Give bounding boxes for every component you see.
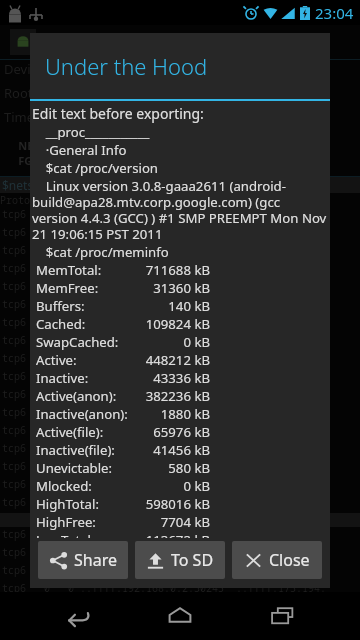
- staticText: 31360 kB: [128, 279, 210, 297]
- staticText: tcp6 0 0 ::ffff:192.168.0.2:30245 ::ffff…: [2, 527, 326, 541]
- staticText: Cached:: [36, 315, 128, 333]
- button[interactable]: Back: [51, 592, 103, 640]
- staticText: MemTotal:: [36, 261, 128, 279]
- staticText: MemFree:: [36, 279, 128, 297]
- button[interactable]: Share: [38, 541, 128, 579]
- staticText: Inactive(anon):: [36, 405, 128, 423]
- staticText: Buffers:: [36, 297, 128, 315]
- staticText: tcp6 0 0 ::ffff:192.168.0.2:30245 ::ffff…: [2, 315, 326, 329]
- staticText: 113672 kB: [128, 531, 210, 538]
- staticText: Share: [74, 549, 117, 571]
- staticText: 382236 kB: [128, 387, 210, 405]
- staticText: tcp6 0 0 ::ffff:192.168.0.2:30245 ::ffff…: [2, 387, 326, 401]
- staticText: Active:: [36, 351, 128, 369]
- staticText: To SD: [171, 549, 214, 571]
- staticText: tcp6 0 0 ::ffff:192.168.0.2:30245 ::ffff…: [2, 441, 326, 455]
- staticText: Device: [4, 60, 45, 78]
- staticText: 140 kB: [128, 297, 210, 315]
- staticText: 448212 kB: [128, 351, 210, 369]
- staticText: 1880 kB: [128, 405, 210, 423]
- staticText: tcp6 0 0 ::ffff:192.168.0.2:30245 ::ffff…: [2, 405, 326, 419]
- staticText: tcp6 0 0 ::ffff:192.168.0.2:30245 ::ffff…: [2, 207, 326, 221]
- staticText: HighFree:: [36, 513, 128, 531]
- staticText: HighTotal:: [36, 495, 128, 513]
- staticText: 41456 kB: [128, 441, 210, 459]
- staticText: $netstat: [2, 177, 49, 193]
- staticText: Proto ... ess: [0, 193, 222, 207]
- staticText: tcp6 0 0 ::ffff:192.168.0.2:30245 ::ffff…: [2, 225, 326, 239]
- staticText: tcp6 0 0 ::ffff:192.168.0.2:30245 ::ffff…: [2, 495, 326, 509]
- staticText: __proc___________: [32, 123, 150, 141]
- staticText: 580 kB: [128, 459, 210, 477]
- button[interactable]: Home: [154, 592, 206, 640]
- staticText: tcp6 0 0 ::ffff:192.168.0.2:30245 ::ffff…: [2, 351, 326, 365]
- staticText: Time: [4, 108, 35, 126]
- staticText: tcp6 0 0 ::ffff:192.168.0.2:30245 ::ffff…: [2, 477, 326, 491]
- staticText: tcp6 0 0 ::ffff:192.168.0.2:30245 ::ffff…: [2, 423, 326, 437]
- staticText: 711688 kB: [128, 261, 210, 279]
- staticText: Close: [269, 549, 310, 571]
- staticText: Under the Hood: [45, 51, 208, 81]
- staticText: Inactive:: [36, 369, 128, 387]
- staticText: tcp6 0 0 ::ffff:192.168.0.2:30245 ::ffff…: [2, 261, 326, 275]
- staticText: 65976 kB: [128, 423, 210, 441]
- button[interactable]: To SD: [135, 541, 225, 579]
- staticText: Unevictable:: [36, 459, 128, 477]
- staticText: 598016 kB: [128, 495, 210, 513]
- staticText: FG: [4, 153, 33, 168]
- button[interactable]: Recent apps: [257, 592, 309, 640]
- staticText: NE: [4, 138, 34, 153]
- staticText: tcp6 0 0 ::ffff:192.168.0.2:30245 ::ffff…: [2, 279, 326, 293]
- staticText: Active(anon):: [36, 387, 128, 405]
- staticText: 7704 kB: [128, 513, 210, 531]
- staticText: 23:04: [315, 3, 354, 23]
- staticText: tcp6 0 0 ::ffff:192.168.0.2:30245 ::ffff…: [2, 581, 326, 595]
- staticText: 43336 kB: [128, 369, 210, 387]
- staticText: 109824 kB: [128, 315, 210, 333]
- staticText: tcp6 0 0 ::ffff:192.168.0.2:30245 ::ffff…: [2, 369, 326, 383]
- staticText: tcp6 0 0 ::ffff:192.168.0.2:30245 ::ffff…: [2, 333, 326, 347]
- staticText: $cat /proc/meminfo: [32, 243, 169, 261]
- staticText: Inactive(file):: [36, 441, 128, 459]
- staticText: SwapCached:: [36, 333, 128, 351]
- staticText: Mlocked:: [36, 477, 128, 495]
- button[interactable]: Close: [232, 541, 322, 579]
- staticText: Root: [4, 84, 33, 102]
- staticText: Linux version 3.0.8-gaaa2611 (android-bu…: [32, 177, 328, 243]
- staticText: LowTotal:: [36, 531, 128, 538]
- staticText: 0 kB: [128, 477, 210, 495]
- staticText: 0 kB: [128, 333, 210, 351]
- staticText: tcp6 0 0 ::ffff:192.168.0.2:30245 ::ffff…: [2, 459, 326, 473]
- staticText: ·General Info: [32, 141, 127, 159]
- staticText: tcp6 0 0 ::ffff:192.168.0.2:30245 ::ffff…: [2, 563, 326, 577]
- staticText: $cat /proc/version: [32, 159, 159, 177]
- staticText: tcp6 0 0 ::ffff:192.168.0.2:30245 ::ffff…: [2, 297, 326, 311]
- staticText: Active(file):: [36, 423, 128, 441]
- staticText: Edit text before exporting:: [32, 104, 204, 123]
- staticText: tcp6 0 0 ::ffff:192.168.0.2:30245 ::ffff…: [2, 545, 326, 559]
- staticText: tcp6 0 0 ::ffff:192.168.0.2:30245 ::ffff…: [2, 243, 326, 257]
